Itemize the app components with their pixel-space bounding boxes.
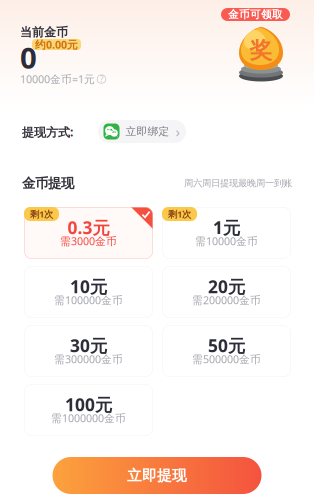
staticText: 周六周日提现最晚周一到账 <box>184 177 292 189</box>
button[interactable]: 100元 <box>24 384 153 436</box>
button[interactable]: 0.3元 <box>24 207 153 259</box>
staticText: 奖 <box>249 37 272 64</box>
staticText: 提现方式: <box>22 124 73 140</box>
staticText: 需1000000金币 <box>51 411 126 425</box>
button[interactable]: 10元 <box>24 266 153 318</box>
staticText: 100元 <box>65 393 112 416</box>
staticText: 30元 <box>70 334 107 357</box>
button[interactable]: 立即绑定 <box>98 120 186 143</box>
staticText: 金币提现 <box>22 175 74 191</box>
staticText: 当前金币 <box>20 25 68 40</box>
staticText: 需3000金币 <box>60 234 117 248</box>
staticText: 约0.00元 <box>35 37 78 52</box>
staticText: ? <box>100 74 103 84</box>
staticText: 需100000金币 <box>54 293 123 307</box>
staticText: 0 <box>20 38 37 77</box>
staticText: 0.3元 <box>67 216 109 239</box>
staticText: 1元 <box>213 216 240 239</box>
staticText: 需300000金币 <box>54 352 123 366</box>
staticText: › <box>175 122 180 141</box>
button[interactable]: 1元 <box>162 207 291 259</box>
staticText: 剩1次 <box>168 208 191 220</box>
staticText: 10元 <box>70 275 107 298</box>
staticText: 20元 <box>208 275 245 298</box>
staticText: 10000金币=1元 <box>20 72 95 86</box>
staticText: 50元 <box>208 334 245 357</box>
staticText: 剩1次 <box>30 208 53 220</box>
button[interactable]: 30元 <box>24 325 153 377</box>
button[interactable]: 20元 <box>162 266 291 318</box>
staticText: 需10000金币 <box>195 234 258 248</box>
staticText: 金币可领取 <box>228 8 283 21</box>
button[interactable]: 50元 <box>162 325 291 377</box>
staticText: 需200000金币 <box>192 293 261 307</box>
staticText: 立即提现 <box>127 466 187 484</box>
staticText: 立即绑定 <box>125 125 169 138</box>
staticText: 需500000金币 <box>192 352 261 366</box>
button[interactable]: 立即提现 <box>52 457 261 494</box>
